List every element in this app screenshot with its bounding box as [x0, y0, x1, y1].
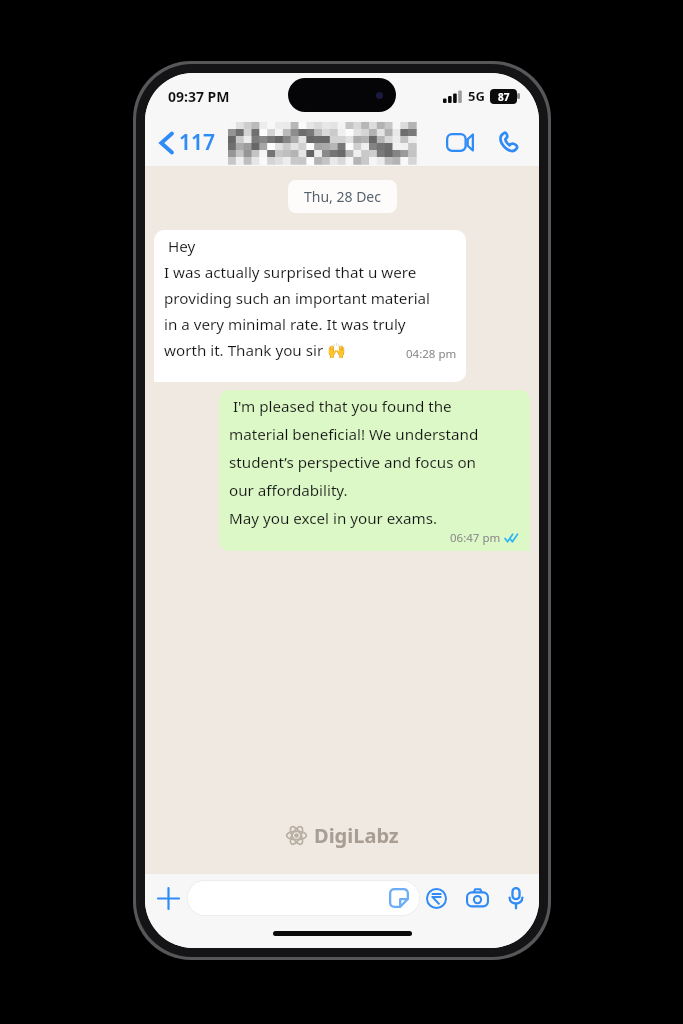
button[interactable]: Video call: [438, 125, 482, 160]
button[interactable]: Voice message: [502, 881, 530, 915]
button[interactable]: Attach: [145, 880, 187, 917]
button[interactable]: Contact name: [228, 122, 416, 164]
button[interactable]: Payments: [420, 882, 453, 915]
staticText: Thu, 28 Dec: [304, 187, 381, 206]
button[interactable]: Camera: [460, 882, 495, 914]
button[interactable]: Thu, 28 Dec: [288, 180, 397, 213]
staticText: 06:47 pm: [450, 530, 501, 546]
button[interactable]: Voice call: [489, 125, 528, 160]
staticText: 09:37 PM: [168, 87, 230, 106]
staticText: 04:28 pm: [406, 346, 457, 362]
button[interactable]: Message input: [187, 880, 420, 916]
button[interactable]: Back, 117 chats: [145, 123, 220, 162]
staticText: Hey I was actually surprised that u were…: [164, 236, 431, 361]
staticText: 87: [498, 90, 510, 104]
button[interactable]: Hey I was actually surprised that u were…: [154, 230, 466, 382]
staticText: 117: [179, 128, 216, 157]
staticText: DigiLabz: [314, 822, 399, 849]
staticText: 5G: [468, 87, 485, 105]
staticText: I'm pleased that you found the material …: [229, 396, 479, 528]
button[interactable]: I'm pleased that you found the material …: [219, 390, 530, 551]
